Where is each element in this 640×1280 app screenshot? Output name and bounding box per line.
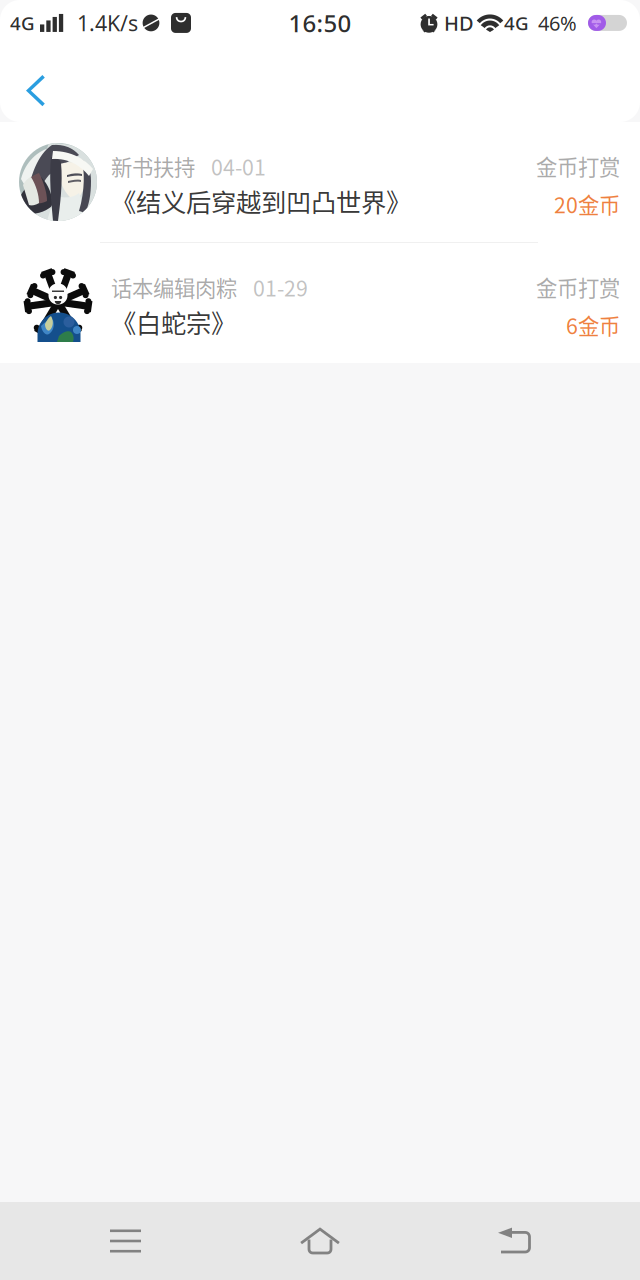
staticText: HD: [444, 10, 474, 36]
staticText: 4G: [10, 10, 35, 35]
staticText: 4G: [504, 10, 529, 35]
staticText: 话本编辑肉粽: [111, 272, 237, 303]
button[interactable]: Back: [390, 1202, 640, 1280]
staticText: 04-01: [211, 151, 266, 182]
staticText: 金币打赏: [536, 272, 620, 302]
button[interactable]: Home: [250, 1202, 390, 1280]
staticText: 16:50: [288, 7, 351, 39]
staticText: 01-29: [253, 272, 308, 303]
staticText: 1.4K/s: [77, 9, 138, 37]
staticText: 《结义后穿越到凹凸世界》: [111, 183, 411, 219]
staticText: 20金币: [554, 188, 620, 219]
staticText: 金币打赏: [536, 151, 620, 181]
staticText: 46%: [538, 10, 577, 36]
staticText: 新书扶持: [111, 151, 195, 182]
button[interactable]: Recent apps: [0, 1202, 250, 1280]
button[interactable]: Back: [0, 58, 88, 124]
button[interactable]: 新书扶持: [0, 122, 640, 242]
staticText: 6金币: [566, 309, 620, 340]
button[interactable]: 话本编辑肉粽: [0, 243, 640, 363]
staticText: 《白蛇宗》: [111, 304, 236, 340]
